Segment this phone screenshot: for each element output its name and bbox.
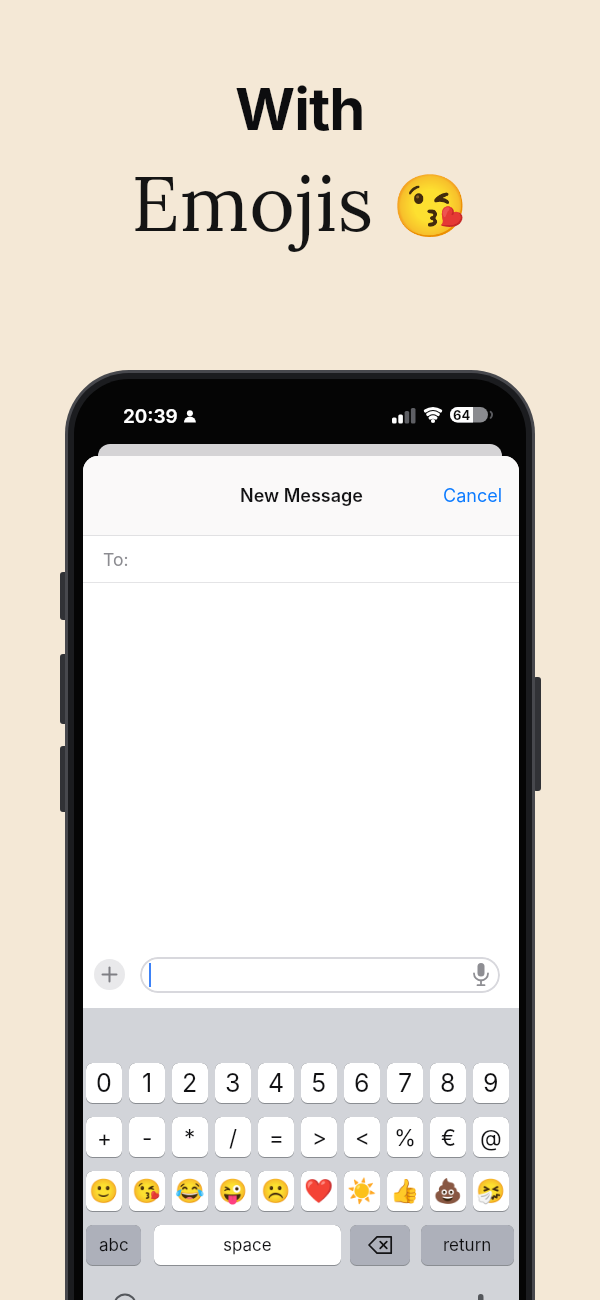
staticText: @ xyxy=(480,1124,502,1151)
button[interactable]: 👍 xyxy=(387,1171,423,1212)
staticText: 🙂 xyxy=(89,1177,119,1205)
staticText: > xyxy=(312,1124,327,1151)
staticText: 👍 xyxy=(390,1177,420,1205)
button[interactable]: 😘 xyxy=(129,1171,165,1212)
button[interactable]: 4 xyxy=(258,1063,294,1104)
staticText: 5 xyxy=(311,1068,327,1098)
staticText: % xyxy=(394,1124,417,1151)
staticText: Emojis xyxy=(131,153,374,253)
staticText: To: xyxy=(103,549,129,570)
staticText: return xyxy=(443,1235,492,1256)
button[interactable]: 7 xyxy=(387,1063,423,1104)
button[interactable]: space xyxy=(154,1225,341,1266)
button[interactable]: 1 xyxy=(129,1063,165,1104)
button[interactable]: € xyxy=(430,1117,466,1158)
button[interactable]: > xyxy=(301,1117,337,1158)
button[interactable]: % xyxy=(387,1117,423,1158)
staticText: 3 xyxy=(225,1068,241,1098)
staticText: 0 xyxy=(96,1068,112,1098)
button[interactable] xyxy=(140,957,500,993)
button[interactable]: ☹️ xyxy=(258,1171,294,1212)
staticText: - xyxy=(142,1124,153,1151)
staticText: abc xyxy=(99,1235,129,1256)
staticText: < xyxy=(355,1124,370,1151)
button[interactable]: 8 xyxy=(430,1063,466,1104)
staticText: 6 xyxy=(354,1068,370,1098)
button[interactable]: 9 xyxy=(473,1063,509,1104)
staticText: 😂 xyxy=(175,1177,205,1205)
staticText: 💩 xyxy=(433,1177,463,1205)
button[interactable]: 3 xyxy=(215,1063,251,1104)
button[interactable]: 2 xyxy=(172,1063,208,1104)
staticText: With xyxy=(235,74,365,138)
button[interactable]: / xyxy=(215,1117,251,1158)
staticText: 🤧 xyxy=(476,1177,506,1205)
button[interactable]: 6 xyxy=(344,1063,380,1104)
button[interactable]: To: xyxy=(83,536,519,583)
button[interactable]: 5 xyxy=(301,1063,337,1104)
staticText: 1 xyxy=(142,1068,153,1098)
button[interactable]: + xyxy=(86,1117,122,1158)
staticText: = xyxy=(269,1124,284,1151)
button[interactable]: 💩 xyxy=(430,1171,466,1212)
button[interactable]: < xyxy=(344,1117,380,1158)
button[interactable] xyxy=(350,1225,410,1266)
staticText: + xyxy=(97,1124,112,1151)
staticText: New Message xyxy=(240,485,363,507)
staticText: ☹️ xyxy=(261,1177,291,1205)
button[interactable]: 🙂 xyxy=(86,1171,122,1212)
button[interactable]: = xyxy=(258,1117,294,1158)
staticText: 4 xyxy=(268,1068,285,1098)
staticText: 20:39 xyxy=(123,405,178,428)
staticText: Cancel xyxy=(443,485,503,507)
button[interactable]: ☀️ xyxy=(344,1171,380,1212)
staticText: 😘 xyxy=(392,170,469,242)
button[interactable]: Cancel xyxy=(360,478,503,514)
staticText: / xyxy=(229,1124,238,1151)
button[interactable]: 😜 xyxy=(215,1171,251,1212)
button[interactable]: @ xyxy=(473,1117,509,1158)
button[interactable] xyxy=(94,959,125,990)
staticText: € xyxy=(441,1124,456,1151)
staticText: ❤️ xyxy=(304,1177,334,1205)
staticText: 2 xyxy=(182,1068,198,1098)
button[interactable]: return xyxy=(421,1225,514,1266)
button[interactable]: 😂 xyxy=(172,1171,208,1212)
button[interactable]: ❤️ xyxy=(301,1171,337,1212)
staticText: 😜 xyxy=(218,1177,248,1205)
staticText: * xyxy=(184,1124,196,1151)
staticText: 8 xyxy=(440,1068,456,1098)
button[interactable]: abc xyxy=(86,1225,141,1266)
staticText: space xyxy=(223,1235,272,1256)
button[interactable]: - xyxy=(129,1117,165,1158)
staticText: ☀️ xyxy=(347,1177,377,1205)
staticText: 7 xyxy=(398,1068,413,1098)
staticText: 64 xyxy=(453,407,471,423)
button[interactable]: 0 xyxy=(86,1063,122,1104)
staticText: 9 xyxy=(483,1068,499,1098)
button[interactable]: * xyxy=(172,1117,208,1158)
staticText: 😘 xyxy=(132,1177,162,1205)
button[interactable]: 🤧 xyxy=(473,1171,509,1212)
